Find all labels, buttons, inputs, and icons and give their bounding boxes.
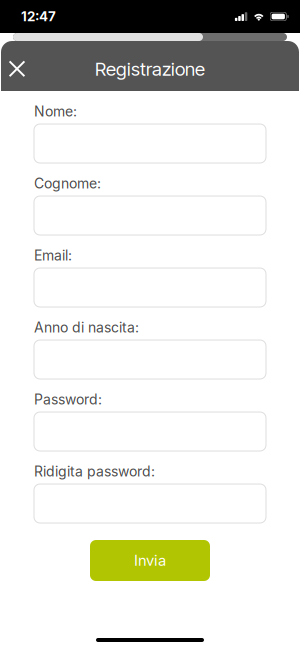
staticText: Password: [34,391,102,408]
button[interactable]: Invia [90,540,210,581]
staticText: Anno di nascita: [34,319,139,336]
staticText: Registrazione [95,58,205,80]
staticText: Cognome: [34,175,101,192]
staticText: Nome: [34,103,77,120]
staticText: Ridigita password: [34,463,155,480]
staticText: Email: [34,247,72,264]
staticText: Invia [134,552,166,569]
button[interactable]: Close [1,41,33,91]
staticText: 12:47 [21,8,56,24]
